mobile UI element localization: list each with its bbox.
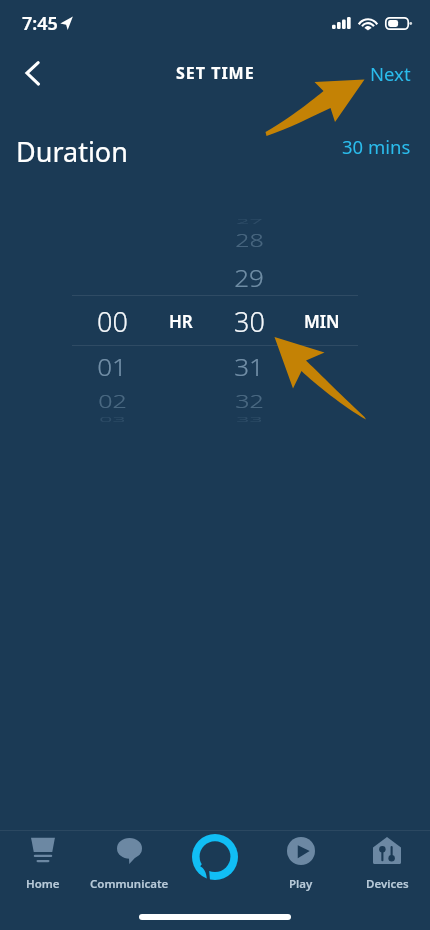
staticText: 32 xyxy=(235,389,264,413)
button[interactable]: 27 xyxy=(204,161,294,481)
button[interactable]: Next xyxy=(362,54,419,93)
staticText: 30 xyxy=(234,303,265,340)
button[interactable]: Communicate xyxy=(86,831,172,893)
button[interactable]: Devices xyxy=(344,831,430,893)
button[interactable]: Back xyxy=(10,51,54,95)
staticText: Play xyxy=(289,876,313,892)
staticText: HR xyxy=(169,310,193,333)
staticText: 7:45 xyxy=(22,11,58,36)
staticText: 00 xyxy=(97,303,128,340)
staticText: SET TIME xyxy=(176,62,255,84)
staticText: 27 xyxy=(236,217,263,226)
staticText: 31 xyxy=(234,350,264,383)
staticText: MIN xyxy=(304,310,340,333)
button[interactable]: Home xyxy=(0,831,86,893)
button[interactable]: Alexa xyxy=(172,831,258,893)
staticText: 03 xyxy=(99,415,126,424)
staticText: 33 xyxy=(236,415,263,424)
staticText: 28 xyxy=(235,228,264,252)
staticText: Duration xyxy=(16,133,128,170)
button[interactable]: 00 xyxy=(67,161,157,481)
staticText: Home xyxy=(26,876,60,892)
button[interactable]: Play xyxy=(258,831,344,893)
staticText: 01 xyxy=(97,350,127,383)
staticText: Devices xyxy=(366,876,409,892)
staticText: Communicate xyxy=(90,876,169,892)
staticText: 30 mins xyxy=(342,134,411,159)
staticText: 29 xyxy=(234,261,264,294)
staticText: Next xyxy=(370,61,411,86)
staticText: 02 xyxy=(98,389,127,413)
